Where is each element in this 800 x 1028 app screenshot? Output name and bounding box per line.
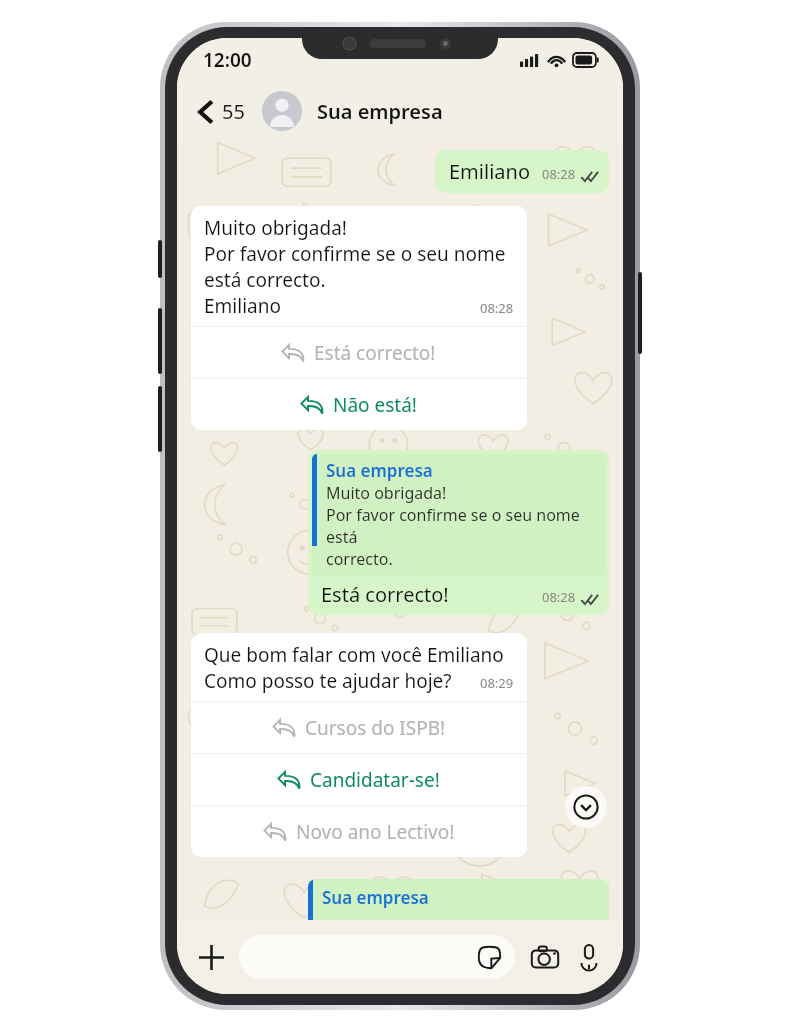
staticText: 12:00 bbox=[203, 47, 252, 73]
button[interactable]: Não está! bbox=[191, 379, 527, 430]
button[interactable]: Sua empresa bbox=[262, 91, 623, 131]
staticText: Sua empresa bbox=[322, 886, 429, 909]
staticText: Emiliano bbox=[204, 293, 281, 319]
staticText: 08:29 bbox=[480, 674, 514, 692]
staticText: Por favor confirme se o seu nome está bbox=[326, 504, 599, 548]
button[interactable]: Scroll to bottom bbox=[565, 786, 607, 828]
staticText: Cursos do ISPB! bbox=[305, 715, 446, 741]
staticText: Candidatar-se! bbox=[310, 767, 440, 793]
staticText: Sua empresa bbox=[317, 98, 443, 125]
button[interactable]: Camera bbox=[525, 937, 565, 977]
staticText: Está correcto! bbox=[314, 340, 436, 366]
staticText: Sua empresa bbox=[326, 459, 433, 482]
button[interactable]: Sua empresa bbox=[308, 879, 609, 920]
button[interactable]: 55 bbox=[195, 92, 249, 131]
staticText: Não está! bbox=[333, 392, 417, 418]
staticText: Emiliano bbox=[449, 158, 530, 185]
staticText: Como posso te ajudar hoje? bbox=[204, 668, 452, 694]
staticText: Está correcto! bbox=[321, 581, 449, 608]
staticText: 08:28 bbox=[480, 299, 514, 317]
button[interactable] bbox=[239, 935, 515, 979]
staticText: Muito obrigada! bbox=[204, 215, 347, 241]
button[interactable]: Sua empresa bbox=[308, 450, 609, 615]
button[interactable]: Voice message bbox=[569, 937, 609, 977]
button[interactable]: Novo ano Lectivo! bbox=[191, 806, 527, 857]
staticText: 55 bbox=[222, 98, 245, 125]
staticText: está correcto. bbox=[204, 267, 326, 293]
button[interactable]: Cursos do ISPB! bbox=[191, 702, 527, 753]
button[interactable]: Attach bbox=[191, 937, 231, 977]
staticText: Por favor confirme se o seu nome bbox=[204, 241, 506, 267]
staticText: Que bom falar com você Emiliano bbox=[204, 642, 504, 668]
staticText: correcto. bbox=[326, 548, 393, 570]
button[interactable]: Está correcto! bbox=[191, 327, 527, 378]
staticText: 08:28 bbox=[542, 165, 576, 183]
staticText: 08:28 bbox=[542, 588, 576, 606]
button[interactable]: Candidatar-se! bbox=[191, 754, 527, 805]
button[interactable]: Emiliano bbox=[435, 150, 609, 193]
staticText: Novo ano Lectivo! bbox=[296, 819, 455, 845]
staticText: Muito obrigada! bbox=[326, 482, 447, 504]
